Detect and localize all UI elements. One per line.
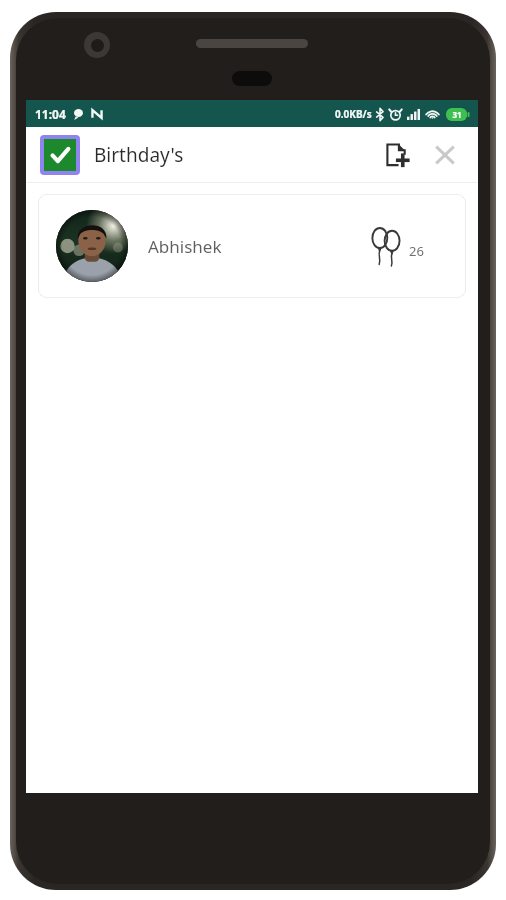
button[interactable]: Abhishek (38, 194, 466, 298)
staticText: 26 (409, 242, 424, 260)
staticText: 0.0KB/s (335, 107, 372, 121)
staticText: Birthday's (94, 142, 184, 168)
button[interactable]: App icon (40, 135, 80, 175)
button[interactable]: Add birthday (374, 132, 420, 178)
staticText: Abhishek (148, 235, 222, 258)
button[interactable]: Close (422, 132, 468, 178)
staticText: 11:04 (35, 106, 66, 122)
staticText: 31 (452, 109, 462, 120)
